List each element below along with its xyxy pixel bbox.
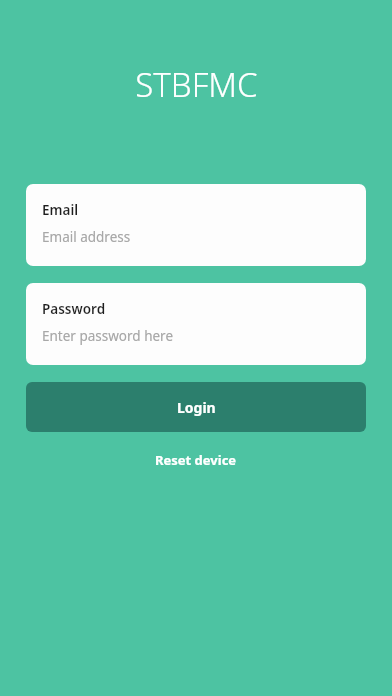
staticText: Email [42,201,79,219]
staticText: Login [177,398,216,417]
staticText: Password [42,300,106,318]
staticText: Reset device [155,451,237,469]
staticText: STBFMC [135,62,258,107]
button[interactable]: Password [26,283,366,365]
button[interactable]: Login [26,382,366,432]
staticText: Email address [42,228,131,246]
button[interactable]: Reset device [145,445,247,475]
staticText: Enter password here [42,327,174,345]
button[interactable]: Email [26,184,366,266]
